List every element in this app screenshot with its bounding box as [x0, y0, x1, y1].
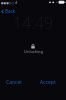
staticText: 14:49 — [13, 12, 54, 34]
staticText: Cancel — [6, 79, 22, 86]
button[interactable]: Cancel — [0, 78, 26, 87]
staticText: ●●●○○ ill — [1, 1, 18, 5]
staticText: Accept — [40, 79, 56, 86]
button[interactable]: Back — [0, 7, 18, 15]
staticText: Unlocking — [24, 49, 43, 54]
button[interactable]: Accept — [36, 78, 66, 87]
staticText: Back — [5, 8, 16, 14]
